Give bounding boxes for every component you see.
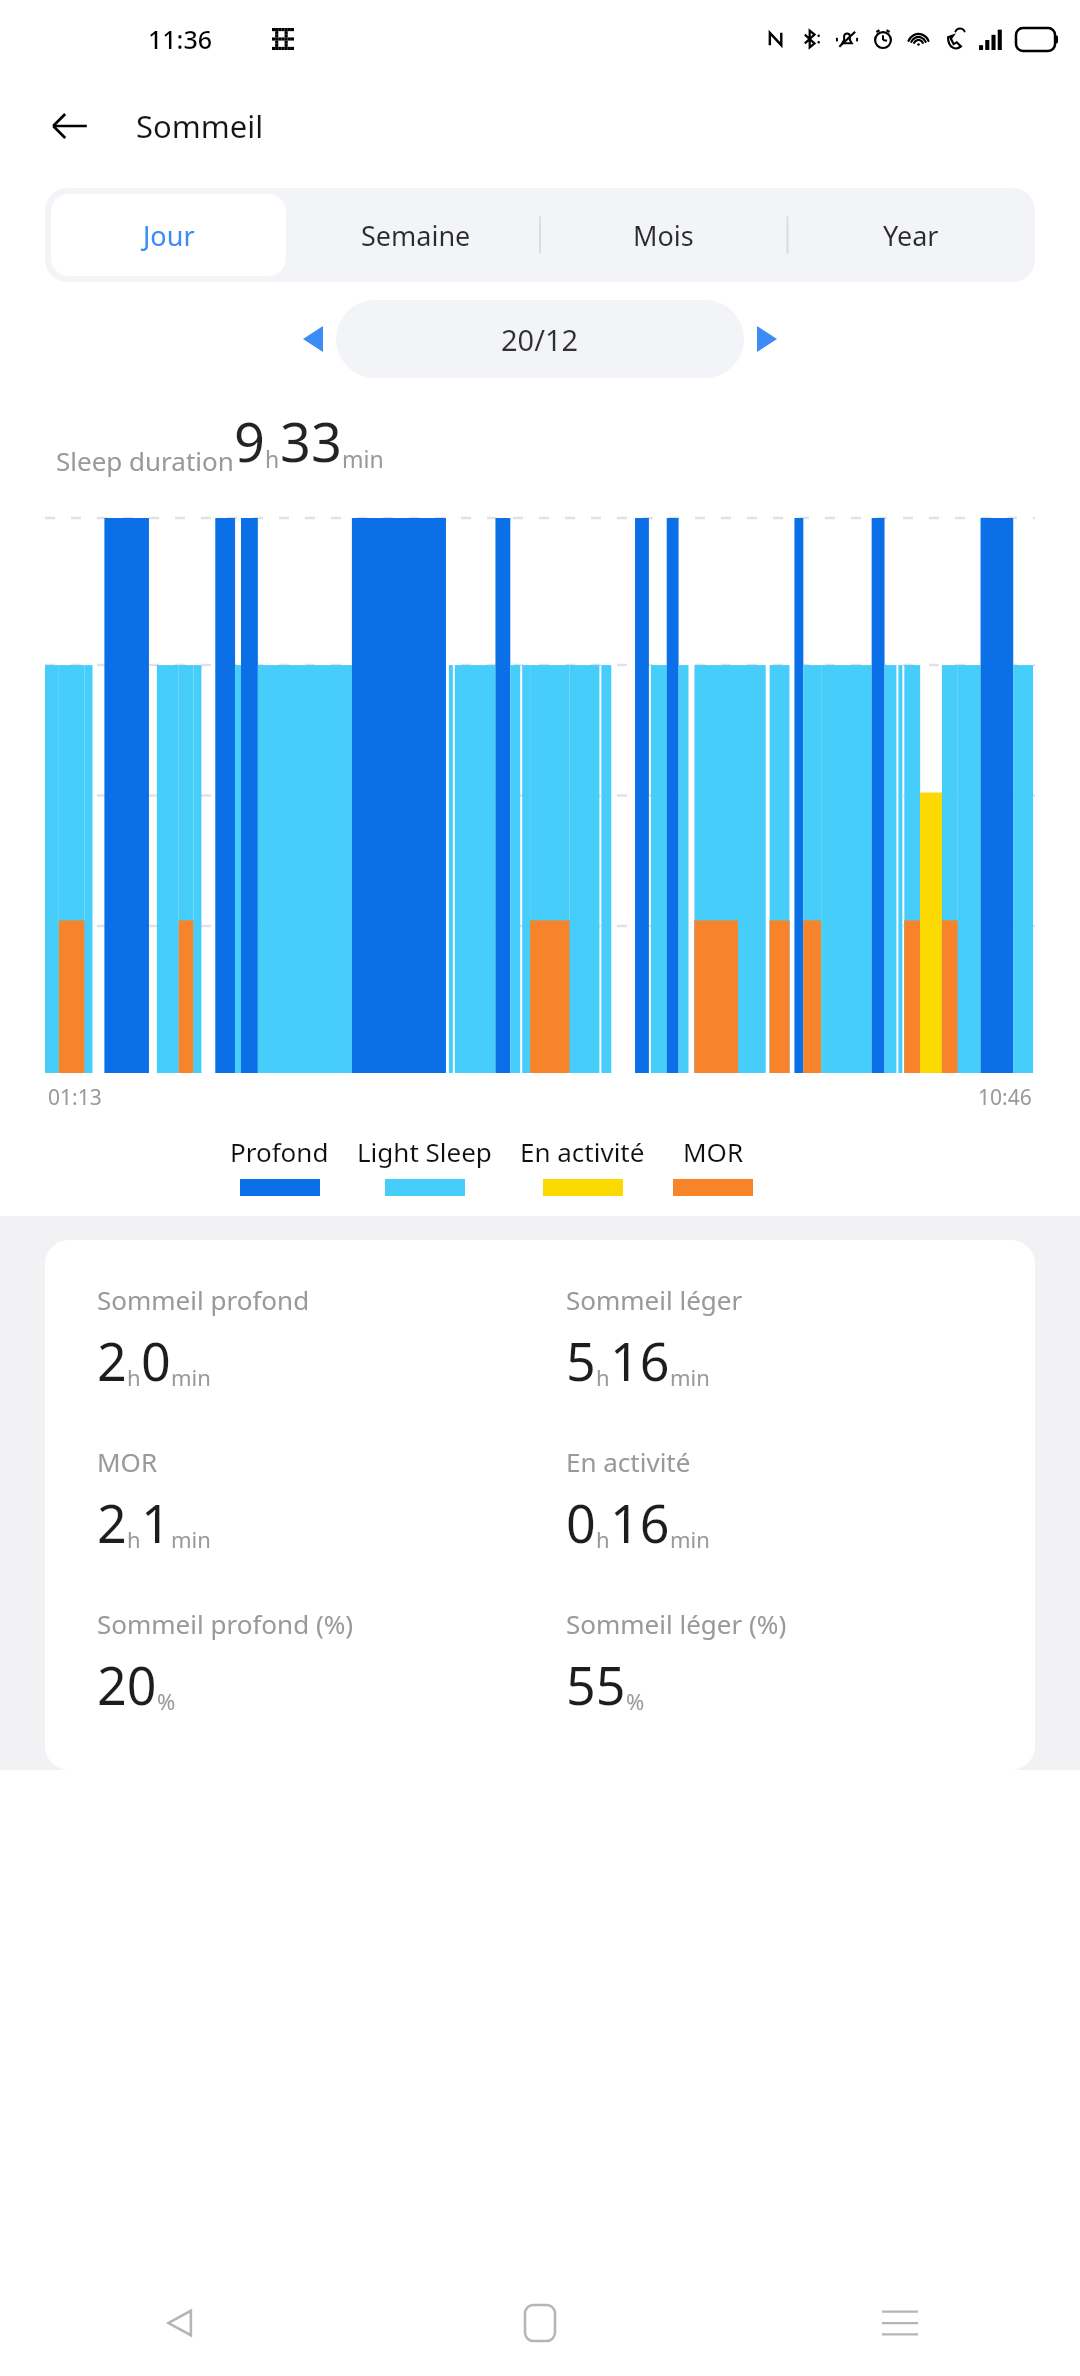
button[interactable]: Semaine <box>298 194 533 276</box>
staticText: % <box>626 1686 645 1716</box>
staticText: 2 <box>97 1325 127 1396</box>
button[interactable]: Recents <box>720 2270 1080 2376</box>
staticText: En activité <box>566 1444 691 1479</box>
staticText: 55 <box>566 1649 626 1720</box>
button[interactable]: Jour <box>51 194 286 276</box>
button[interactable]: Year <box>793 194 1029 276</box>
button[interactable]: Next day <box>744 316 790 362</box>
staticText: Sommeil léger (%) <box>566 1606 787 1641</box>
staticText: min <box>171 1524 211 1554</box>
staticText: 1 <box>141 1487 171 1558</box>
staticText: Light Sleep <box>357 1134 492 1169</box>
staticText: Sommeil <box>136 105 264 147</box>
staticText: h <box>127 1362 141 1392</box>
staticText: Profond <box>230 1134 329 1169</box>
staticText: 01:13 <box>48 1083 102 1112</box>
staticText: Sommeil léger <box>566 1282 743 1317</box>
staticText: 2 <box>97 1487 127 1558</box>
staticText: 16 <box>610 1325 670 1396</box>
staticText: Sommeil profond <box>97 1282 310 1317</box>
staticText: Year <box>883 217 939 254</box>
staticText: MOR <box>683 1134 744 1169</box>
staticText: h <box>265 443 280 474</box>
staticText: Sommeil profond (%) <box>97 1606 354 1641</box>
staticText: 11:36 <box>148 22 213 56</box>
staticText: % <box>157 1686 176 1716</box>
staticText: MOR <box>97 1444 158 1479</box>
staticText: Sleep duration <box>56 443 234 478</box>
staticText: En activité <box>520 1134 645 1169</box>
button[interactable]: Previous day <box>290 316 336 362</box>
button[interactable]: Mois <box>545 194 781 276</box>
staticText: h <box>127 1524 141 1554</box>
staticText: 33 <box>280 404 342 478</box>
staticText: h <box>596 1524 610 1554</box>
staticText: Semaine <box>361 217 471 254</box>
button[interactable]: Back <box>0 2270 360 2376</box>
staticText: 16 <box>610 1487 670 1558</box>
staticText: Jour <box>143 217 195 254</box>
staticText: 5 <box>566 1325 596 1396</box>
staticText: 9 <box>234 404 265 478</box>
button[interactable]: Back <box>42 98 98 154</box>
staticText: min <box>670 1524 710 1554</box>
staticText: min <box>670 1362 710 1392</box>
staticText: Mois <box>633 217 694 254</box>
staticText: 20 <box>97 1649 157 1720</box>
staticText: min <box>342 443 384 474</box>
button[interactable]: Home <box>360 2270 720 2376</box>
staticText: h <box>596 1362 610 1392</box>
button[interactable]: 20/12 <box>336 300 744 378</box>
staticText: 10:46 <box>978 1083 1032 1112</box>
staticText: 0 <box>566 1487 596 1558</box>
staticText: 0 <box>141 1325 171 1396</box>
staticText: min <box>171 1362 211 1392</box>
staticText: 20/12 <box>501 320 579 359</box>
